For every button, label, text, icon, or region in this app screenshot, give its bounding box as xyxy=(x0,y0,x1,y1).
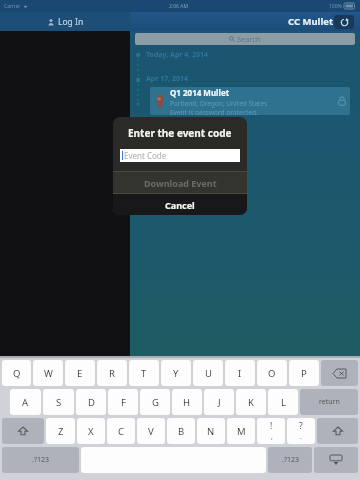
staticText: . xyxy=(300,432,302,442)
button[interactable]: V xyxy=(137,418,165,444)
staticText: Download Event xyxy=(144,177,217,189)
staticText: Z xyxy=(58,425,64,438)
staticText: CC Mullet xyxy=(288,15,334,28)
staticText: Q xyxy=(13,367,21,380)
button[interactable]: ! xyxy=(257,418,285,444)
staticText: F xyxy=(121,396,126,409)
staticText: N xyxy=(207,425,215,438)
staticText: , xyxy=(271,432,273,442)
staticText: H xyxy=(183,396,191,409)
staticText: G xyxy=(152,396,159,409)
button[interactable]: Event Code xyxy=(120,149,240,162)
button[interactable]: Download Event xyxy=(113,172,247,193)
button[interactable]: T xyxy=(129,360,159,386)
staticText: 2:06 AM xyxy=(169,3,188,10)
staticText: M xyxy=(237,425,246,438)
staticText: X xyxy=(88,425,94,438)
staticText: Search xyxy=(237,34,261,44)
button[interactable]: J xyxy=(204,389,234,415)
staticText: V xyxy=(148,425,154,438)
button[interactable]: Y xyxy=(161,360,191,386)
button[interactable]: R xyxy=(97,360,127,386)
button[interactable]: B xyxy=(167,418,195,444)
staticText: Enter the event code xyxy=(128,126,232,140)
button[interactable]: S xyxy=(43,389,74,415)
button[interactable]: P xyxy=(289,360,319,386)
staticText: B xyxy=(178,425,185,438)
staticText: .?123 xyxy=(32,455,49,465)
staticText: R xyxy=(109,367,115,380)
button[interactable]: Z xyxy=(46,418,75,444)
staticText: Cancel xyxy=(165,199,195,211)
staticText: D xyxy=(88,396,95,409)
button[interactable]: return xyxy=(300,389,358,415)
button[interactable]: X xyxy=(77,418,105,444)
staticText: Q1 2014 Mullet xyxy=(170,87,230,98)
button[interactable]: H xyxy=(172,389,202,415)
staticText: P xyxy=(301,367,307,380)
staticText: C xyxy=(118,425,125,438)
staticText: Event is password protected. xyxy=(170,108,258,115)
staticText: Portland, Oregon, United States xyxy=(170,99,268,108)
button[interactable]: Hide keyboard xyxy=(314,447,358,473)
staticText: Today, Apr 4, 2014 xyxy=(146,50,209,60)
button[interactable]: Apr 17, 2014 xyxy=(146,74,189,84)
staticText: Y xyxy=(173,367,179,380)
button[interactable]: O xyxy=(257,360,287,386)
staticText: Log In xyxy=(58,16,84,28)
button[interactable]: W xyxy=(33,360,63,386)
button[interactable]: Q xyxy=(2,360,31,386)
button[interactable]: ? xyxy=(287,418,315,444)
staticText: L xyxy=(281,396,286,409)
button[interactable]: .?123 xyxy=(268,447,312,473)
staticText: 100% xyxy=(329,3,342,10)
button[interactable]: Shift xyxy=(317,418,358,444)
button[interactable]: N xyxy=(197,418,225,444)
staticText: ? xyxy=(299,420,303,432)
button[interactable]: L xyxy=(268,389,298,415)
button[interactable]: U xyxy=(193,360,223,386)
button[interactable]: Log In xyxy=(0,12,130,31)
button[interactable]: Q1 2014 Mullet xyxy=(154,87,346,115)
staticText: E xyxy=(77,367,83,380)
staticText: A xyxy=(22,396,29,409)
button[interactable]: I xyxy=(225,360,255,386)
button[interactable]: Today, Apr 4, 2014 xyxy=(146,50,209,60)
button[interactable]: C xyxy=(107,418,135,444)
staticText: Carrier xyxy=(4,3,21,10)
button[interactable]: D xyxy=(76,389,106,415)
staticText: Event Code xyxy=(124,150,167,161)
button[interactable]: .?123 xyxy=(2,447,79,473)
staticText: K xyxy=(248,396,254,409)
button[interactable]: E xyxy=(65,360,95,386)
button[interactable]: K xyxy=(236,389,266,415)
button[interactable]: M xyxy=(227,418,255,444)
staticText: T xyxy=(141,367,147,380)
staticText: O xyxy=(268,367,276,380)
button[interactable]: Shift xyxy=(2,418,44,444)
staticText: S xyxy=(56,396,62,409)
staticText: U xyxy=(205,367,212,380)
staticText: return xyxy=(319,397,340,407)
button[interactable]: Search xyxy=(135,33,355,45)
button[interactable]: F xyxy=(108,389,138,415)
staticText: Apr 17, 2014 xyxy=(146,74,189,84)
button[interactable]: Refresh xyxy=(334,15,354,29)
button[interactable]: Backspace xyxy=(321,360,358,386)
staticText: W xyxy=(44,367,53,380)
staticText: I xyxy=(238,367,242,380)
staticText: ! xyxy=(270,420,273,432)
button[interactable]: G xyxy=(140,389,170,415)
button[interactable]: A xyxy=(10,389,41,415)
staticText: .?123 xyxy=(282,455,299,465)
staticText: J xyxy=(218,396,221,409)
button[interactable]: Cancel xyxy=(113,194,247,215)
